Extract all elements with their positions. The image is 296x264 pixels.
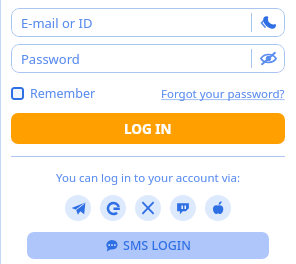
button[interactable]: Sign in with Twitch (170, 195, 196, 221)
staticText: Remember (30, 85, 96, 102)
staticText: Forgot your password? (161, 86, 285, 102)
button[interactable]: Password (11, 44, 285, 73)
staticText: SMS LOGIN (123, 237, 191, 254)
button[interactable]: Forgot your password? (161, 84, 285, 104)
button[interactable]: Remember (11, 83, 96, 104)
button[interactable]: Sign in with Google (100, 195, 126, 221)
button[interactable]: SMS LOGIN (27, 232, 269, 259)
staticText: You can log in to your account via: (56, 170, 241, 186)
button[interactable]: Switch to phone number login (252, 8, 285, 37)
button[interactable]: Sign in with Apple (205, 195, 231, 221)
staticText: LOG IN (124, 120, 172, 138)
button[interactable]: Sign in with Telegram (65, 195, 91, 221)
staticText: E-mail or ID (21, 14, 93, 32)
button[interactable]: LOG IN (11, 113, 285, 144)
button[interactable]: Sign in with X (135, 195, 161, 221)
button[interactable]: E-mail or ID (11, 8, 285, 37)
button[interactable]: Show password (252, 44, 285, 73)
staticText: Password (21, 50, 80, 68)
